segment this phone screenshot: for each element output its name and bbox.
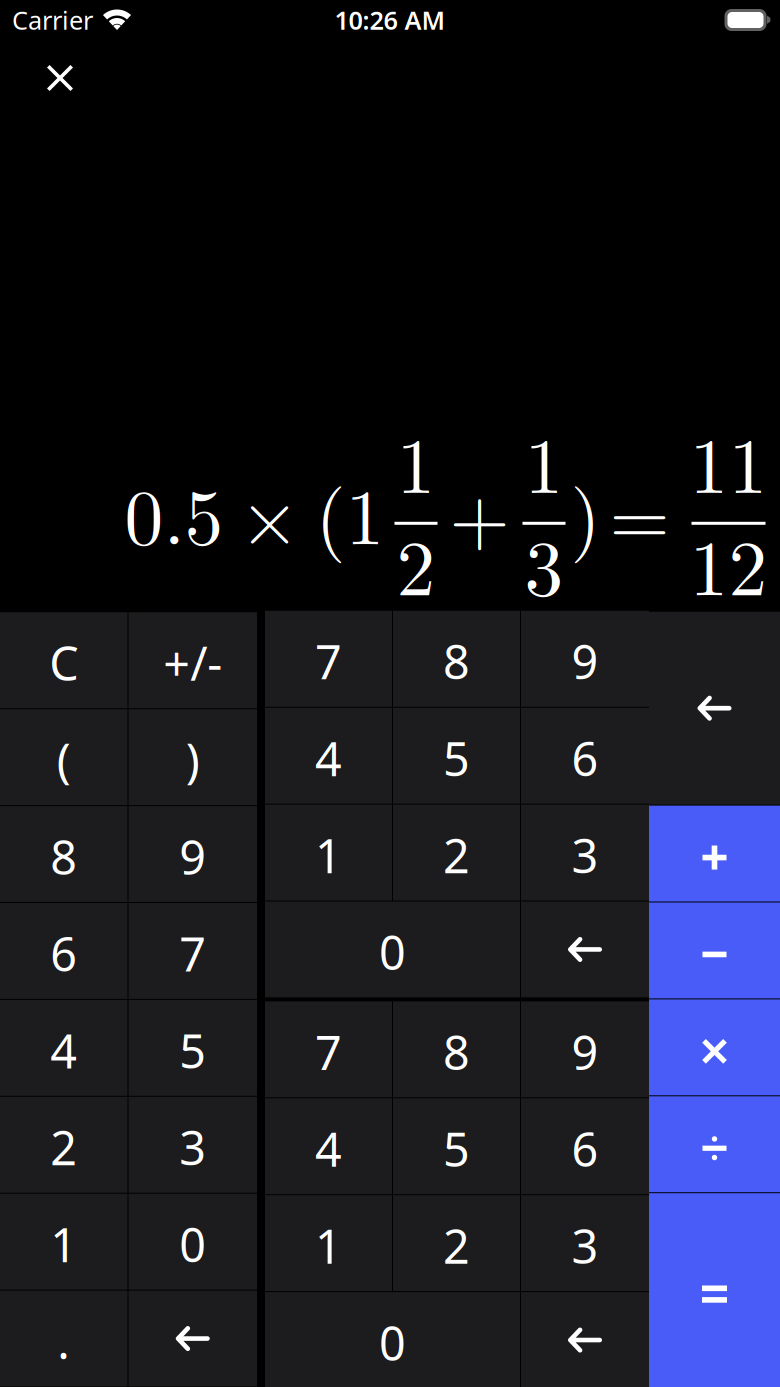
button[interactable]: Subtract — [649, 902, 780, 998]
staticText: 10:26 AM — [334, 3, 445, 37]
button[interactable]: 6 — [521, 708, 649, 804]
staticText: 6 — [571, 727, 598, 789]
staticText: 5 — [179, 1019, 206, 1081]
button[interactable]: +/- — [128, 612, 257, 708]
staticText: 2 — [50, 1116, 77, 1178]
button[interactable]: 3 — [128, 1097, 257, 1193]
staticText: 8 — [443, 1021, 470, 1083]
staticText: 5 — [443, 1118, 470, 1180]
button[interactable]: Add — [649, 806, 780, 901]
button[interactable]: 5 — [128, 1000, 257, 1096]
staticText: 3 — [571, 824, 598, 886]
staticText: 3 — [524, 508, 563, 618]
button[interactable]: 4 — [0, 1000, 127, 1096]
staticText: 2 — [396, 508, 435, 618]
staticText: 0 — [379, 921, 406, 983]
button[interactable]: 1 — [265, 805, 392, 900]
button[interactable]: 6 — [0, 903, 127, 999]
staticText: 0 — [179, 1213, 206, 1275]
staticText: ) — [186, 729, 200, 791]
staticText: ( — [57, 729, 71, 791]
staticText: 4 — [315, 727, 342, 789]
staticText: . — [57, 1310, 70, 1372]
button[interactable]: Backspace — [521, 901, 649, 997]
button[interactable]: Divide — [649, 1096, 780, 1192]
button[interactable]: . — [0, 1291, 127, 1386]
button[interactable]: 3 — [521, 805, 649, 900]
button[interactable]: 7 — [265, 611, 392, 707]
staticText: 2 — [443, 1215, 470, 1277]
button[interactable]: Close — [28, 40, 92, 91]
staticText: 4 — [50, 1019, 77, 1081]
button[interactable]: 2 — [393, 805, 520, 900]
staticText: 9 — [571, 630, 598, 692]
staticText: 1 — [315, 824, 342, 886]
staticText: 5 — [443, 727, 470, 789]
button[interactable]: Multiply — [649, 999, 780, 1095]
button[interactable]: C — [0, 612, 127, 708]
staticText: = — [609, 457, 669, 567]
button[interactable]: 0 — [128, 1194, 257, 1290]
button[interactable]: 9 — [521, 1001, 649, 1097]
staticText: 8 — [50, 826, 77, 888]
staticText: 9 — [571, 1021, 598, 1083]
button[interactable]: 0 — [265, 901, 520, 997]
button[interactable]: 1 — [0, 1194, 127, 1290]
staticText: 4 — [315, 1118, 342, 1180]
button[interactable]: 4 — [265, 708, 392, 804]
staticText: 6 — [50, 922, 77, 984]
button[interactable]: Backspace — [128, 1291, 257, 1386]
button[interactable]: 8 — [393, 1001, 520, 1097]
staticText: 0.5 — [124, 457, 223, 567]
button[interactable]: 5 — [393, 708, 520, 804]
staticText: Carrier — [12, 3, 93, 37]
button[interactable]: 1 — [265, 1195, 392, 1291]
button[interactable]: 4 — [265, 1098, 392, 1194]
staticText: 0 — [379, 1312, 406, 1374]
button[interactable]: Equals — [649, 1193, 780, 1387]
button[interactable]: 7 — [265, 1001, 392, 1097]
button[interactable]: 2 — [0, 1097, 127, 1193]
staticText: 7 — [315, 630, 342, 692]
button[interactable]: 7 — [128, 903, 257, 999]
staticText: 11 — [689, 406, 767, 515]
staticText: (1 — [315, 457, 384, 567]
staticText: 8 — [443, 630, 470, 692]
button[interactable]: 8 — [393, 611, 520, 707]
button[interactable]: 9 — [128, 806, 257, 902]
button[interactable]: 9 — [521, 611, 649, 707]
staticText: + — [449, 457, 509, 567]
button[interactable]: 2 — [393, 1195, 520, 1291]
staticText: 1 — [50, 1213, 77, 1275]
button[interactable]: Backspace — [649, 612, 780, 805]
staticText: 3 — [179, 1116, 206, 1178]
staticText: 9 — [179, 826, 206, 888]
staticText: 6 — [571, 1118, 598, 1180]
button[interactable]: 0 — [265, 1292, 520, 1387]
button[interactable]: 6 — [521, 1098, 649, 1194]
button[interactable]: Backspace — [521, 1292, 649, 1387]
staticText: 3 — [571, 1215, 598, 1277]
staticText: 1 — [524, 406, 563, 515]
staticText: ) — [570, 457, 600, 567]
staticText: 7 — [179, 922, 206, 984]
staticText: +/- — [163, 632, 222, 694]
button[interactable]: 5 — [393, 1098, 520, 1194]
button[interactable]: 3 — [521, 1195, 649, 1291]
staticText: × — [239, 457, 299, 567]
staticText: 2 — [443, 824, 470, 886]
staticText: 1 — [396, 406, 435, 515]
button[interactable]: 8 — [0, 806, 127, 902]
staticText: C — [49, 632, 78, 694]
button[interactable]: ) — [128, 709, 257, 805]
staticText: 7 — [315, 1021, 342, 1083]
staticText: 1 — [315, 1215, 342, 1277]
staticText: 12 — [689, 508, 767, 618]
button[interactable]: ( — [0, 709, 127, 805]
